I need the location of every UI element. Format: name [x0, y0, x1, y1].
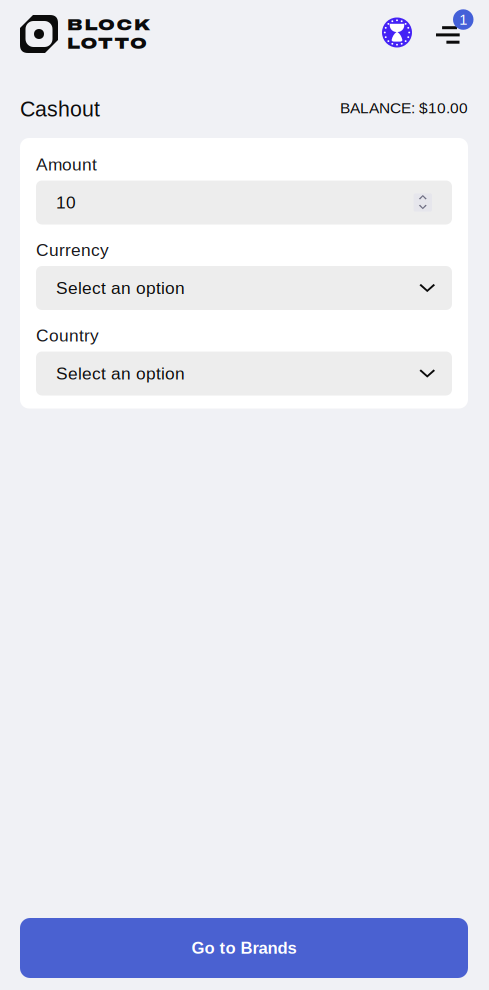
- staticText: Go to Brands: [191, 939, 296, 957]
- staticText: Amount: [36, 155, 97, 174]
- staticText: BLOCK: [67, 16, 150, 34]
- staticText: Currency: [36, 240, 109, 260]
- button[interactable]: Select an option: [36, 351, 452, 395]
- staticText: Select an option: [56, 278, 185, 298]
- staticText: LOTTO: [67, 34, 147, 52]
- button[interactable]: Go to Brands: [20, 918, 468, 978]
- staticText: 10: [56, 193, 76, 212]
- staticText: Cashout: [20, 97, 100, 121]
- button[interactable]: Select an option: [36, 266, 452, 310]
- button[interactable]: Block Lotto home: [20, 15, 150, 53]
- staticText: Country: [36, 326, 99, 345]
- staticText: Select an option: [56, 364, 185, 383]
- button[interactable]: Tokens: [382, 17, 412, 47]
- button[interactable]: Menu: [436, 9, 473, 45]
- staticText: 1: [459, 11, 467, 28]
- staticText: BALANCE: $10.00: [340, 99, 468, 116]
